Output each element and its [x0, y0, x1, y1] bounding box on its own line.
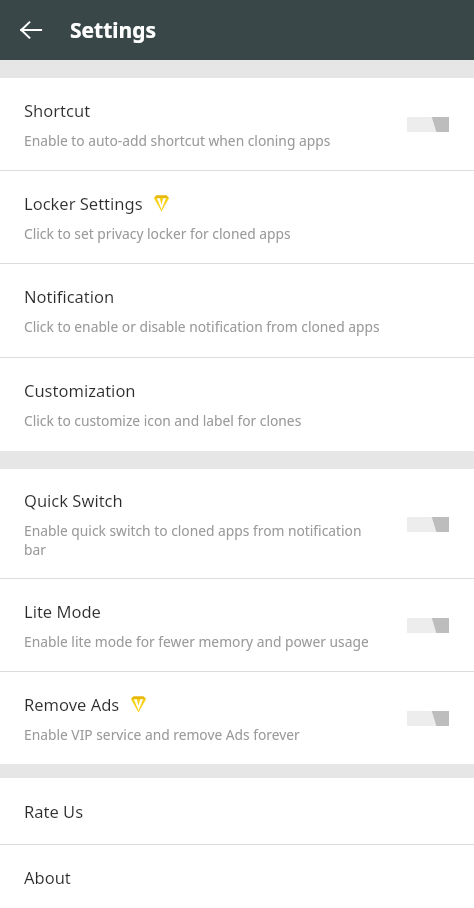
staticText: Shortcut [24, 99, 91, 121]
button[interactable]: Quick Switch toggle [404, 509, 452, 539]
staticText: About [24, 866, 71, 888]
staticText: Quick Switch [24, 489, 123, 511]
staticText: Click to enable or disable notification … [24, 317, 450, 336]
staticText: Lite Mode [24, 600, 101, 622]
staticText: Notification [24, 285, 115, 307]
staticText: Click to set privacy locker for cloned a… [24, 224, 450, 243]
staticText: Customization [24, 379, 136, 401]
button[interactable]: Shortcut [0, 78, 474, 170]
button[interactable]: Lite Mode [0, 579, 474, 671]
button[interactable]: Locker Settings [0, 171, 474, 263]
staticText: Settings [70, 16, 157, 45]
staticText: Enable VIP service and remove Ads foreve… [24, 725, 450, 744]
staticText: Rate Us [24, 800, 84, 822]
staticText: Enable quick switch to cloned apps from … [24, 521, 365, 559]
button[interactable]: Notification [0, 264, 474, 357]
button[interactable]: Back [8, 7, 54, 53]
button[interactable]: Remove Ads toggle [404, 703, 452, 733]
staticText: Click to customize icon and label for cl… [24, 411, 450, 430]
staticText: Enable to auto-add shortcut when cloning… [24, 131, 450, 150]
button[interactable]: Quick Switch [0, 469, 474, 578]
button[interactable]: Customization [0, 358, 474, 451]
button[interactable]: Lite Mode toggle [404, 610, 452, 640]
button[interactable]: About [0, 845, 474, 908]
staticText: Enable lite mode for fewer memory and po… [24, 632, 450, 651]
staticText: Locker Settings [24, 192, 143, 214]
button[interactable]: Rate Us [0, 778, 474, 844]
staticText: Remove Ads [24, 693, 120, 715]
button[interactable]: Shortcut toggle [404, 109, 452, 139]
button[interactable]: Remove Ads [0, 672, 474, 764]
